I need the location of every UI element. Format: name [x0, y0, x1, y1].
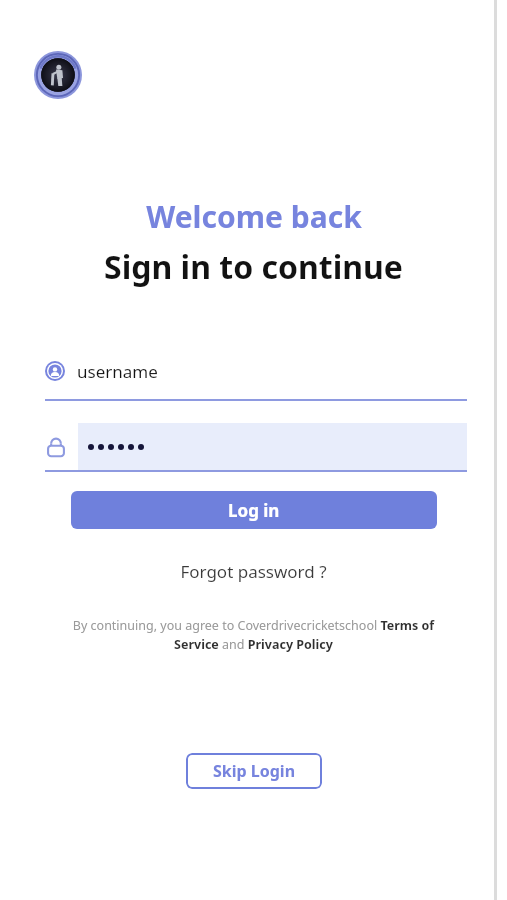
staticText: Skip Login: [213, 760, 296, 782]
staticText: Sign in to continue: [104, 245, 403, 289]
button[interactable]: Skip Login: [186, 753, 322, 789]
staticText: By continuing, you agree to Coverdrivecr…: [50, 617, 457, 653]
staticText: Forgot password ?: [180, 560, 327, 583]
button[interactable]: username: [45, 352, 467, 401]
button[interactable]: Forgot password ?: [172, 556, 335, 587]
staticText: Welcome back: [146, 196, 362, 237]
staticText: Log in: [228, 499, 280, 522]
button[interactable]: [45, 423, 467, 472]
staticText: username: [77, 360, 158, 383]
button[interactable]: App logo: [34, 51, 82, 99]
button[interactable]: Log in: [71, 491, 437, 529]
